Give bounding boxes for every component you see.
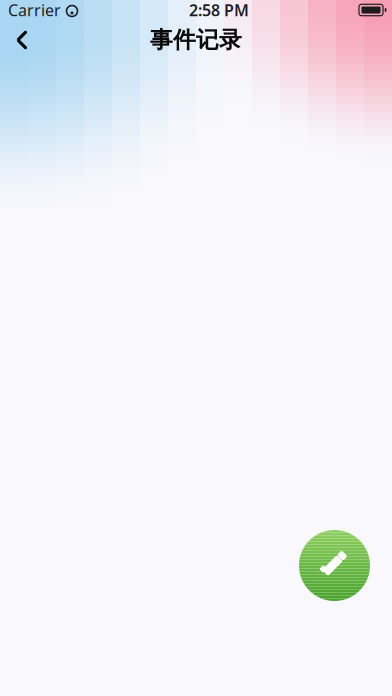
button[interactable]: New entry	[299, 530, 370, 601]
staticText: 2:58 PM	[189, 0, 249, 21]
button[interactable]: Back	[0, 20, 44, 60]
staticText: 事件记录	[150, 26, 242, 54]
staticText: Carrier	[8, 0, 61, 21]
